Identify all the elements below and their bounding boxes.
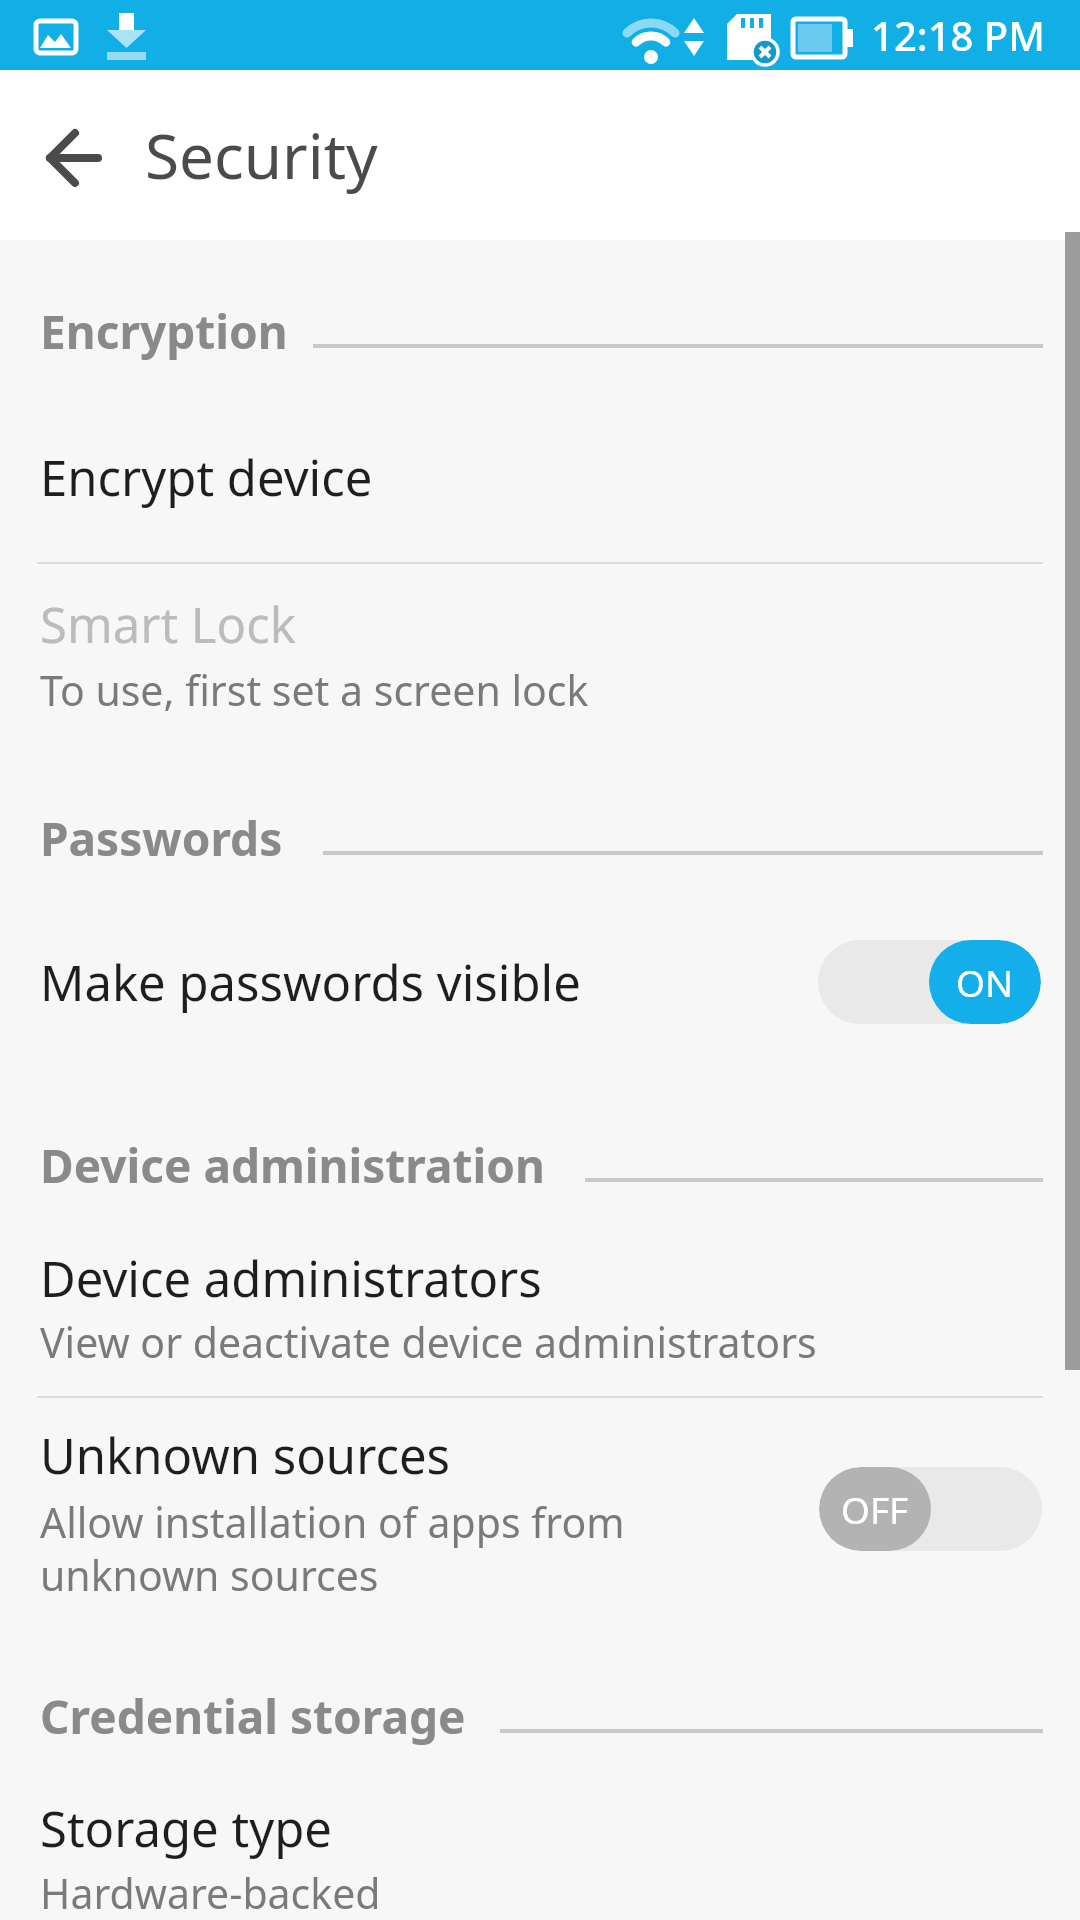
staticText: Device administrators <box>40 1245 542 1312</box>
staticText: OFF <box>841 1484 909 1534</box>
staticText: Make passwords visible <box>40 949 581 1016</box>
button[interactable]: ON <box>818 940 1041 1024</box>
button[interactable] <box>0 1795 1080 1920</box>
staticText: Smart Lock <box>40 591 296 658</box>
staticText: ON <box>956 957 1014 1007</box>
staticText: Storage type <box>40 1795 332 1862</box>
button[interactable] <box>0 70 150 240</box>
staticText: To use, first set a screen lock <box>40 662 589 718</box>
staticText: Allow installation of apps from <box>40 1494 625 1550</box>
staticText: Encrypt device <box>40 444 373 511</box>
staticText: Credential storage <box>40 1685 466 1748</box>
button[interactable] <box>0 585 1080 725</box>
button[interactable] <box>0 1235 1080 1370</box>
button[interactable] <box>0 930 1080 1035</box>
staticText: Security <box>145 113 378 197</box>
staticText: Device administration <box>40 1134 545 1197</box>
button[interactable] <box>0 1415 1080 1600</box>
button[interactable]: OFF <box>819 1467 1042 1551</box>
staticText: 12:18 PM <box>871 8 1045 62</box>
staticText: Hardware-backed <box>40 1865 381 1920</box>
staticText: Unknown sources <box>40 1422 451 1489</box>
staticText: unknown sources <box>40 1547 379 1603</box>
button[interactable] <box>0 420 1080 535</box>
staticText: Encryption <box>40 300 288 363</box>
staticText: View or deactivate device administrators <box>40 1314 817 1370</box>
staticText: Passwords <box>40 807 283 870</box>
